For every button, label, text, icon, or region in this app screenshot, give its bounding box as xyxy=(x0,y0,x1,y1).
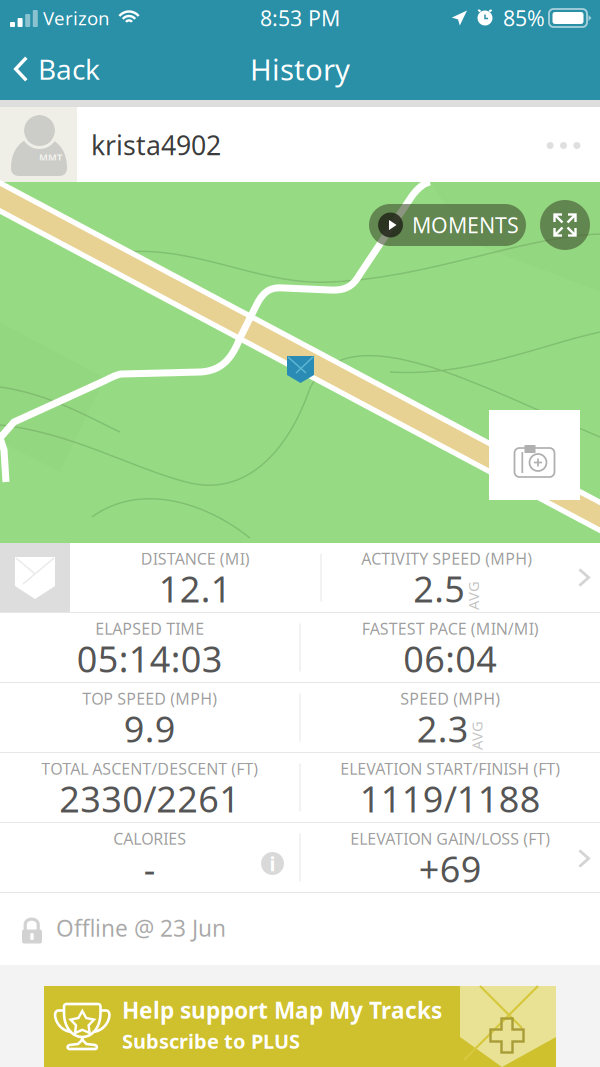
staticText: 2.5 xyxy=(413,565,465,612)
staticText: TOP SPEED (MPH) xyxy=(82,688,217,709)
staticText: 8:53 PM xyxy=(260,4,340,32)
button[interactable]: i xyxy=(261,852,284,875)
staticText: History xyxy=(250,49,350,88)
staticText: CALORIES xyxy=(113,828,186,849)
staticText: ACTIVITY SPEED (MPH) xyxy=(361,548,532,569)
staticText: ELEVATION START/FINISH (FT) xyxy=(340,758,560,779)
staticText: DISTANCE (MI) xyxy=(141,548,250,569)
staticText: krista4902 xyxy=(91,127,221,163)
staticText: 2330/2261 xyxy=(59,775,240,822)
staticText: SPEED (MPH) xyxy=(400,688,500,709)
staticText: +69 xyxy=(419,845,482,892)
button[interactable]: MMT xyxy=(0,107,600,182)
staticText: 85% xyxy=(503,4,545,32)
staticText: Offline @ 23 Jun xyxy=(56,913,226,943)
staticText: Verizon xyxy=(43,6,110,30)
staticText: AVG xyxy=(462,726,491,745)
button[interactable]: Back xyxy=(0,38,116,100)
staticText: 12.1 xyxy=(159,565,232,612)
staticText: 05:14:03 xyxy=(77,635,223,682)
staticText: Back xyxy=(38,50,100,88)
staticText: ELEVATION GAIN/LOSS (FT) xyxy=(350,828,550,849)
staticText: FASTEST PACE (MIN/MI) xyxy=(362,618,539,639)
staticText: 06:04 xyxy=(403,635,497,682)
staticText: MOMENTS xyxy=(412,211,519,239)
staticText: TOTAL ASCENT/DESCENT (FT) xyxy=(41,758,258,779)
staticText: Subscribe to PLUS xyxy=(122,1028,300,1054)
staticText: 9.9 xyxy=(124,705,176,752)
button[interactable]: Help support Map My Tracks xyxy=(44,986,556,1067)
staticText: i xyxy=(269,850,275,877)
staticText: 1119/1188 xyxy=(360,775,541,822)
staticText: MMT xyxy=(39,151,62,163)
staticText: Help support Map My Tracks xyxy=(122,995,442,1025)
button[interactable] xyxy=(540,200,590,250)
button[interactable] xyxy=(489,410,580,500)
staticText: 2.3 xyxy=(417,705,469,752)
staticText: AVG xyxy=(459,586,488,605)
staticText: - xyxy=(144,845,156,892)
button[interactable]: MOMENTS xyxy=(369,204,526,246)
staticText: ELAPSED TIME xyxy=(95,618,204,639)
